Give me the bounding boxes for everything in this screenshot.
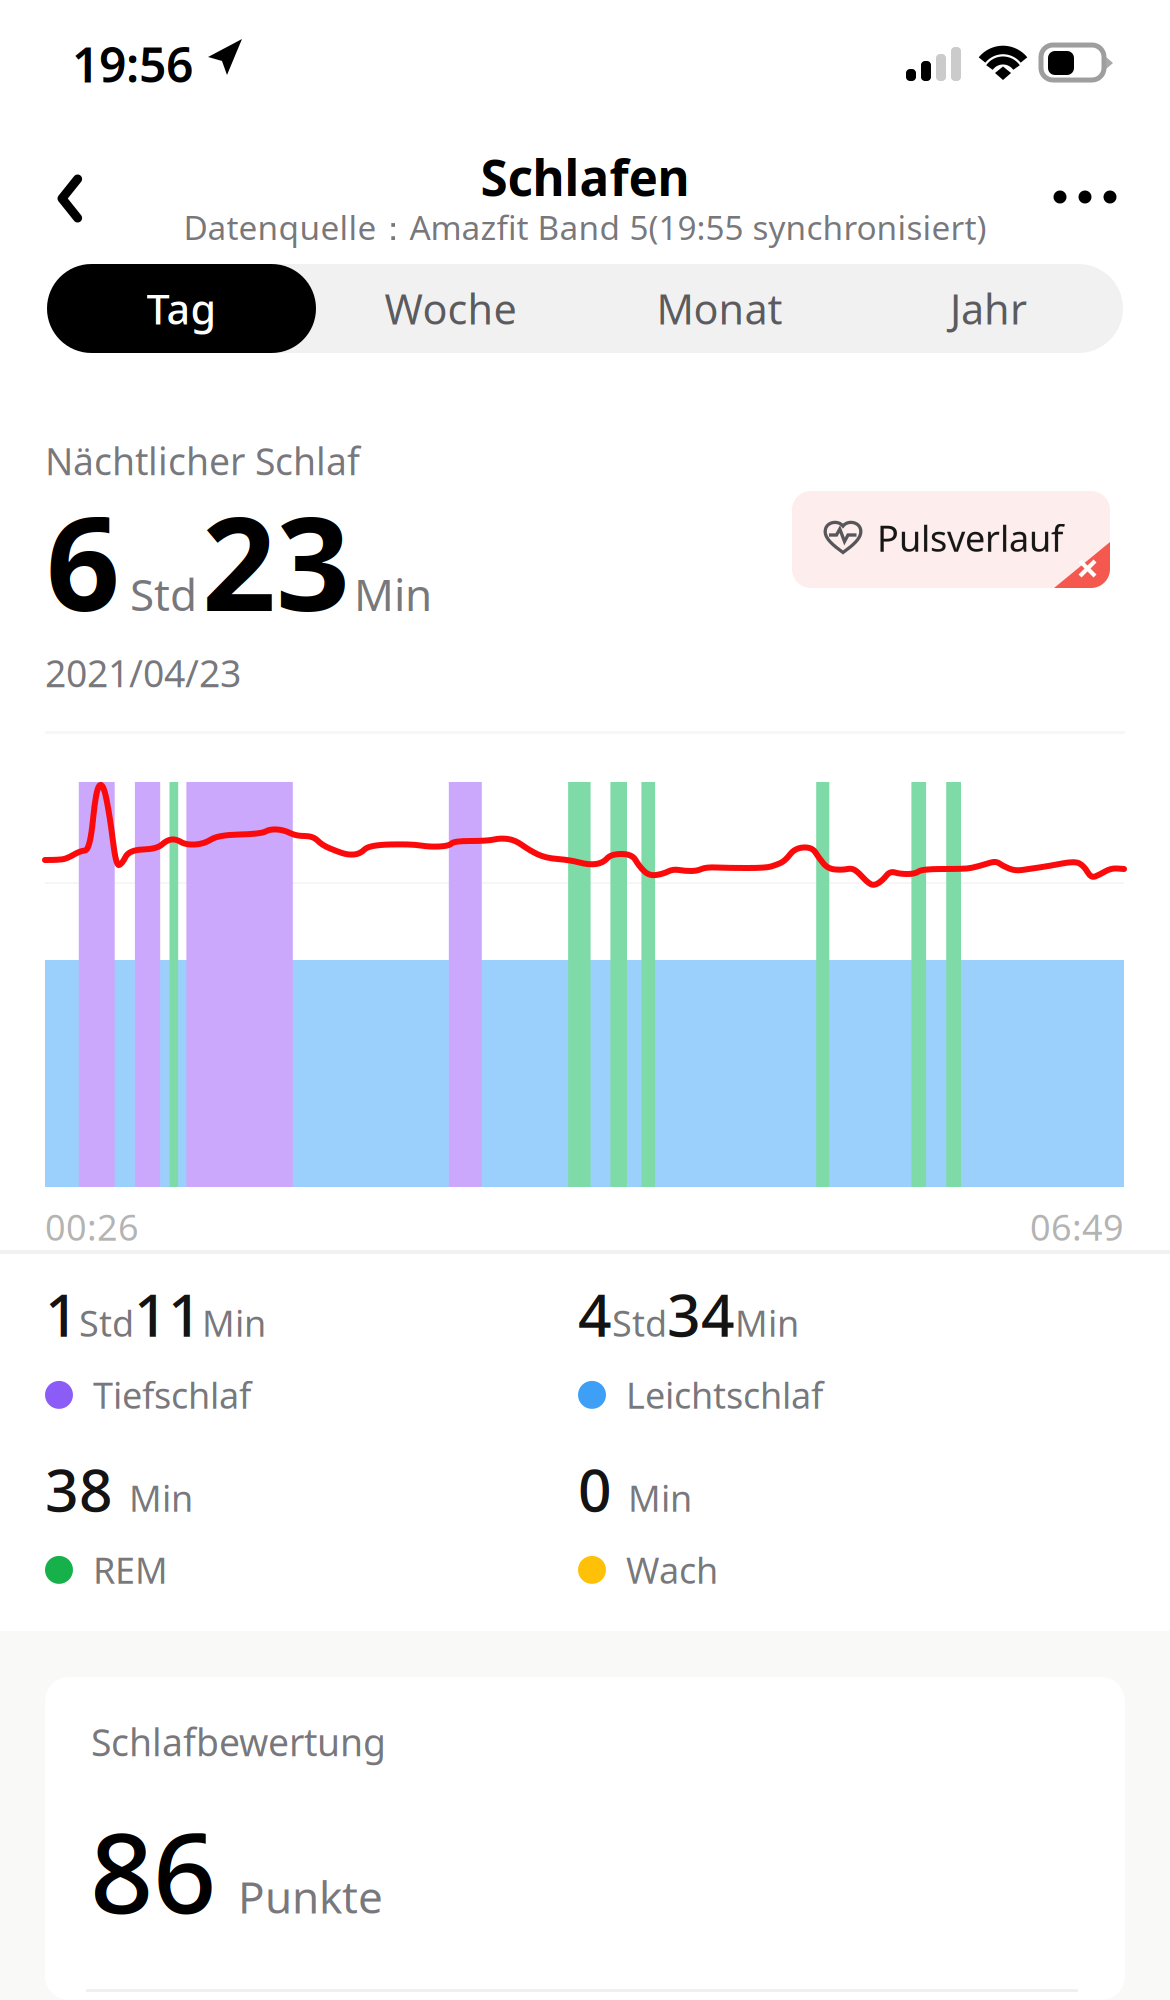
staticText: REM — [93, 1546, 168, 1594]
staticText: Pulsverlauf — [877, 514, 1063, 562]
staticText: 11 — [134, 1275, 202, 1353]
staticText: Std — [130, 565, 197, 623]
button[interactable]: Jahr — [854, 264, 1123, 353]
staticText: Leichtschlaf — [626, 1371, 823, 1419]
staticText: 6 — [46, 475, 120, 647]
staticText: Punkte — [238, 1867, 383, 1925]
staticText: 34 — [667, 1275, 735, 1353]
staticText: 23 — [202, 475, 350, 647]
staticText: 1 — [45, 1275, 79, 1353]
button[interactable]: More options — [1030, 155, 1140, 239]
button[interactable]: Monat — [585, 264, 854, 353]
staticText: 0 — [578, 1450, 612, 1528]
staticText: 38 — [45, 1450, 113, 1528]
button[interactable]: Pulsverlauf — [792, 491, 1110, 588]
staticText: Nächtlicher Schlaf — [45, 436, 360, 486]
button[interactable]: Tag — [47, 264, 316, 353]
staticText: Jahr — [950, 281, 1027, 336]
staticText: 19:56 — [72, 32, 193, 96]
staticText: Min — [354, 565, 432, 623]
staticText: Tiefschlaf — [93, 1371, 251, 1419]
button[interactable]: Woche — [316, 264, 585, 353]
staticText: Min — [129, 1474, 193, 1522]
staticText: Schlafbewertung — [91, 1717, 386, 1767]
staticText: 00:26 — [45, 1203, 139, 1251]
staticText: Woche — [384, 281, 516, 336]
staticText: Min — [628, 1474, 692, 1522]
staticText: Tag — [146, 281, 216, 336]
staticText: 4 — [578, 1275, 612, 1353]
staticText: 06:49 — [1030, 1203, 1124, 1251]
staticText: Schlafen — [480, 144, 689, 209]
staticText: Min — [735, 1299, 799, 1347]
staticText: Std — [612, 1299, 667, 1347]
staticText: 86 — [90, 1797, 216, 1944]
staticText: Std — [79, 1299, 134, 1347]
button[interactable]: Back — [38, 156, 124, 240]
staticText: Datenquelle：Amazfit Band 5(19:55 synchro… — [183, 205, 986, 249]
staticText: Min — [202, 1299, 266, 1347]
staticText: Monat — [656, 281, 782, 336]
staticText: Wach — [626, 1546, 718, 1594]
staticText: 2021/04/23 — [45, 648, 241, 698]
